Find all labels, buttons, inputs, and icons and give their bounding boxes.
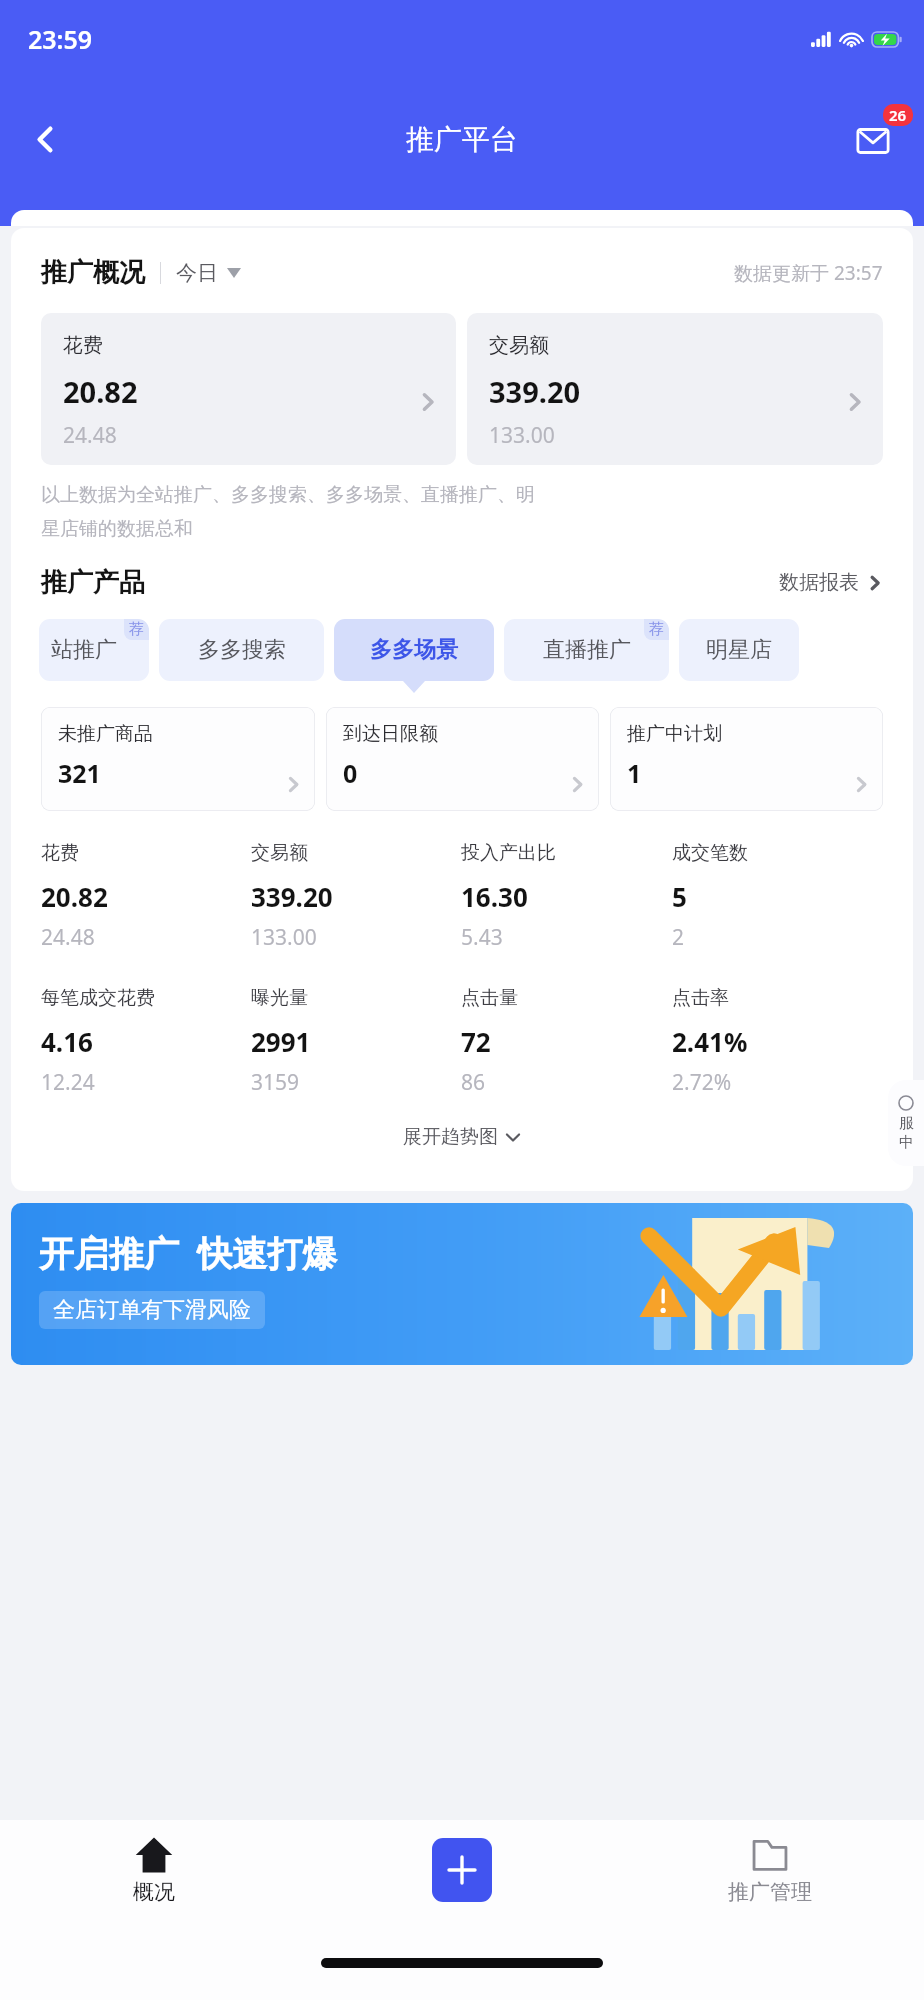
staticText: 推广产品 <box>41 566 145 599</box>
staticText: 16.30 <box>461 879 528 914</box>
button[interactable]: 到达日限额 <box>326 707 599 811</box>
staticText: 推广中计划 <box>627 722 722 746</box>
staticText: 339.20 <box>251 879 333 914</box>
button[interactable]: 数据报表 <box>779 570 883 595</box>
button[interactable]: 消息，26条未读 <box>842 108 904 170</box>
staticText: 12.24 <box>41 1068 95 1097</box>
staticText: 直播推广 <box>543 636 631 664</box>
staticText: 全店订单有下滑风险 <box>53 1296 251 1324</box>
staticText: 投入产出比 <box>461 841 556 865</box>
staticText: 86 <box>461 1068 486 1097</box>
staticText: 曝光量 <box>251 986 308 1010</box>
staticText: 20.82 <box>41 879 108 914</box>
staticText: 24.48 <box>41 923 95 952</box>
staticText: 3159 <box>251 1068 300 1097</box>
staticText: 推广管理 <box>728 1879 812 1905</box>
staticText: 4.16 <box>41 1024 93 1059</box>
staticText: 0 <box>343 756 358 790</box>
staticText: 数据报表 <box>779 570 859 595</box>
button[interactable]: 推广管理 <box>616 1820 924 1938</box>
button[interactable]: 概况 <box>0 1820 308 1938</box>
staticText: 明星店 <box>706 636 772 664</box>
staticText: 133.00 <box>251 923 317 952</box>
button[interactable]: 推广中计划 <box>610 707 883 811</box>
staticText: 推广概况 <box>41 256 145 289</box>
staticText: 多多场景 <box>370 636 458 664</box>
staticText: 交易额 <box>251 841 308 865</box>
staticText: 概况 <box>133 1879 175 1905</box>
button[interactable]: 新建推广 <box>432 1838 492 1902</box>
button[interactable]: 花费 <box>41 313 456 465</box>
staticText: 成交笔数 <box>672 841 748 865</box>
staticText: 以上数据为全站推广、多多搜索、多多场景、直播推广、明 星店铺的数据总和 <box>41 483 535 540</box>
staticText: 点击量 <box>461 986 518 1010</box>
staticText: 未推广商品 <box>58 722 153 746</box>
staticText: 321 <box>58 756 101 790</box>
button[interactable]: 返回 <box>16 110 74 168</box>
button[interactable]: 直播推广 <box>504 619 669 681</box>
staticText: 133.00 <box>489 421 555 450</box>
staticText: 2.41% <box>672 1024 748 1059</box>
staticText: 展开趋势图 <box>403 1125 498 1149</box>
staticText: 24.48 <box>63 421 117 450</box>
staticText: 2.72% <box>672 1068 732 1097</box>
staticText: 23:59 <box>28 22 93 56</box>
button[interactable]: 多多场景 <box>334 619 494 681</box>
staticText: 每笔成交花费 <box>41 986 155 1010</box>
staticText: 1 <box>627 756 642 790</box>
staticText: 多多搜索 <box>198 636 286 664</box>
staticText: 5.43 <box>461 923 503 952</box>
button[interactable]: 展开趋势图 <box>11 1125 913 1149</box>
staticText: 5 <box>672 879 687 914</box>
staticText: 站推广 <box>51 636 117 664</box>
staticText: 服 <box>899 1114 914 1133</box>
staticText: 339.20 <box>489 372 581 411</box>
staticText: 26 <box>889 105 907 125</box>
button[interactable]: 今日 <box>176 260 241 286</box>
button[interactable]: 客服中心 <box>888 1080 924 1166</box>
button[interactable]: 未推广商品 <box>41 707 315 811</box>
button[interactable]: 交易额 <box>467 313 883 465</box>
button[interactable]: 多多搜索 <box>159 619 324 681</box>
staticText: 荐 <box>649 620 664 639</box>
button[interactable]: 明星店 <box>679 619 799 681</box>
staticText: 今日 <box>176 260 218 286</box>
staticText: 开启推广 快速打爆 <box>39 1229 338 1277</box>
staticText: 荐 <box>129 620 144 639</box>
staticText: 72 <box>461 1024 491 1059</box>
staticText: 20.82 <box>63 372 138 411</box>
staticText: 中 <box>899 1133 914 1152</box>
staticText: 花费 <box>63 333 103 358</box>
staticText: 2991 <box>251 1024 311 1059</box>
staticText: 花费 <box>41 841 79 865</box>
staticText: 点击率 <box>672 986 729 1010</box>
button[interactable]: 站推广 <box>39 619 149 681</box>
staticText: 到达日限额 <box>343 722 438 746</box>
staticText: 推广平台 <box>406 122 518 157</box>
staticText: 数据更新于 23:57 <box>734 260 883 286</box>
staticText: 2 <box>672 923 685 952</box>
staticText: 交易额 <box>489 333 549 358</box>
button[interactable]: 开启推广 快速打爆 <box>11 1203 913 1365</box>
